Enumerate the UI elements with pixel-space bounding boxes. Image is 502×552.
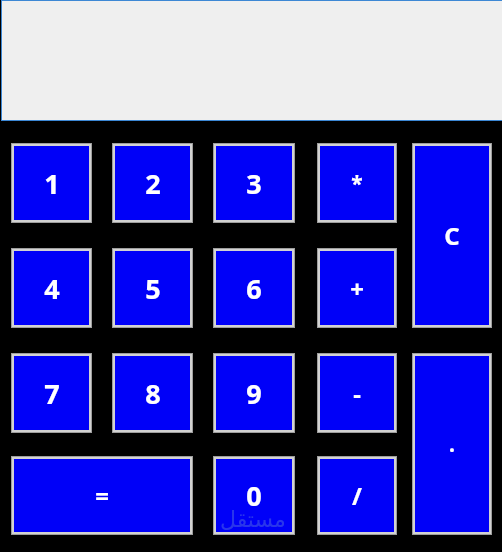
staticText: 0 [246, 477, 262, 514]
staticText: * [351, 169, 363, 198]
staticText: + [350, 272, 364, 305]
button[interactable]: Four [11, 248, 92, 328]
button[interactable]: Nine [213, 353, 295, 433]
button[interactable]: Seven [11, 353, 92, 433]
staticText: 5 [145, 270, 161, 307]
button[interactable]: Clear [412, 143, 492, 328]
staticText: 1 [44, 165, 60, 202]
button[interactable]: Equals [11, 456, 193, 535]
staticText: 7 [44, 375, 60, 412]
staticText: C [444, 219, 460, 252]
button[interactable]: Multiply [317, 143, 397, 223]
button[interactable]: Zero [213, 456, 295, 535]
button[interactable]: One [11, 143, 92, 223]
button[interactable]: Plus [317, 248, 397, 328]
staticText: / [352, 479, 362, 512]
button[interactable]: Divide [317, 456, 397, 535]
staticText: 2 [145, 165, 161, 202]
staticText: - [353, 377, 361, 410]
staticText: 4 [44, 270, 60, 307]
staticText: 8 [145, 375, 161, 412]
button[interactable]: Five [112, 248, 193, 328]
button[interactable]: Two [112, 143, 193, 223]
button[interactable]: Three [213, 143, 295, 223]
button[interactable]: Six [213, 248, 295, 328]
staticText: 9 [246, 375, 262, 412]
staticText: . [449, 430, 455, 459]
button[interactable]: Eight [112, 353, 193, 433]
staticText: = [95, 479, 109, 512]
staticText: 3 [246, 165, 262, 202]
staticText: مستقل [220, 507, 286, 533]
button[interactable]: Decimal point [412, 353, 492, 535]
button[interactable]: Minus [317, 353, 397, 433]
staticText: 6 [246, 270, 262, 307]
button[interactable] [1, 0, 502, 121]
